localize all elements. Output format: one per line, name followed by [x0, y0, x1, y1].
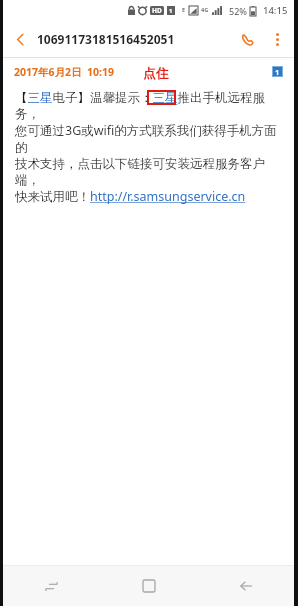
- button[interactable]: Back: [3, 22, 37, 56]
- button[interactable]: Call: [230, 22, 264, 56]
- staticText: 您可通过3G或wifi的方式联系我们获得手机方面的: [15, 122, 286, 156]
- staticText: 1: [169, 7, 173, 15]
- button[interactable]: Home: [100, 566, 197, 606]
- staticText: 10691173181516452051: [37, 31, 230, 47]
- staticText: HD: [152, 6, 162, 15]
- staticText: E: [182, 6, 186, 13]
- staticText: 1: [275, 67, 280, 77]
- staticText: 14:15: [263, 4, 288, 17]
- button[interactable]: Highlighted link 三星: [147, 90, 176, 105]
- staticText: 快来试用吧！http://r.samsungservice.cn: [15, 188, 246, 205]
- staticText: 点住: [143, 65, 169, 81]
- staticText: 4G: [201, 6, 209, 13]
- button[interactable]: Back: [197, 566, 294, 606]
- staticText: 【三星电子】温馨提示：三星推出手机远程服务，: [15, 90, 286, 122]
- staticText: 技术支持，点击以下链接可安装远程服务客户端，: [15, 156, 286, 188]
- staticText: 2017年6月2日 10:19: [14, 65, 114, 79]
- button[interactable]: More options: [264, 26, 290, 52]
- button[interactable]: Recent apps: [3, 566, 100, 606]
- staticText: 52%: [229, 5, 247, 17]
